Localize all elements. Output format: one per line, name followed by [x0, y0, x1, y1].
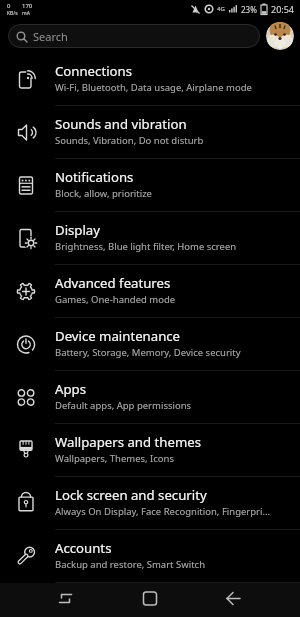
button[interactable]: Display — [0, 212, 300, 265]
staticText: KB/s — [7, 10, 18, 17]
staticText: Games, One-handed mode — [55, 293, 176, 306]
staticText: Wi-Fi, Bluetooth, Data usage, Airplane m… — [55, 81, 252, 94]
button[interactable]: Connections — [0, 53, 300, 106]
button[interactable]: Lock screen and security — [0, 477, 300, 530]
staticText: Backup and restore, Smart Switch — [55, 558, 206, 571]
button[interactable] — [133, 583, 167, 617]
button[interactable] — [216, 583, 250, 617]
staticText: Wallpapers and themes — [55, 433, 201, 451]
staticText: Always On Display, Face Recognition, Fin… — [55, 505, 271, 518]
staticText: Notifications — [55, 168, 134, 186]
staticText: 20:54 — [271, 3, 295, 15]
staticText: Advanced features — [55, 274, 171, 292]
button[interactable]: Notifications — [0, 159, 300, 212]
staticText: Default apps, App permissions — [55, 399, 192, 412]
staticText: Battery, Storage, Memory, Device securit… — [55, 346, 241, 359]
staticText: Search — [33, 29, 68, 44]
staticText: 0 — [7, 2, 11, 10]
staticText: Block, allow, prioritize — [55, 187, 152, 200]
staticText: Brightness, Blue light filter, Home scre… — [55, 240, 237, 253]
staticText: 4G — [217, 5, 225, 13]
staticText: Connections — [55, 62, 132, 80]
staticText: Device maintenance — [55, 327, 181, 345]
staticText: mA — [22, 10, 30, 17]
button[interactable]: Device maintenance — [0, 318, 300, 371]
staticText: Sounds and vibration — [55, 115, 187, 133]
staticText: Display — [55, 221, 100, 239]
staticText: Wallpapers, Themes, Icons — [55, 452, 175, 465]
button[interactable]: Accounts — [0, 530, 300, 583]
staticText: 23% — [241, 4, 257, 15]
staticText: Accounts — [55, 539, 112, 557]
button[interactable]: Advanced features — [0, 265, 300, 318]
staticText: Lock screen and security — [55, 486, 207, 504]
staticText: Sounds, Vibration, Do not disturb — [55, 134, 204, 147]
button[interactable]: Apps — [0, 371, 300, 424]
button[interactable] — [49, 583, 83, 617]
button[interactable] — [266, 22, 294, 50]
button[interactable]: Wallpapers and themes — [0, 424, 300, 477]
button[interactable]: Search — [8, 24, 260, 48]
button[interactable]: Sounds and vibration — [0, 106, 300, 159]
staticText: 170 — [22, 2, 33, 10]
staticText: Apps — [55, 380, 86, 398]
